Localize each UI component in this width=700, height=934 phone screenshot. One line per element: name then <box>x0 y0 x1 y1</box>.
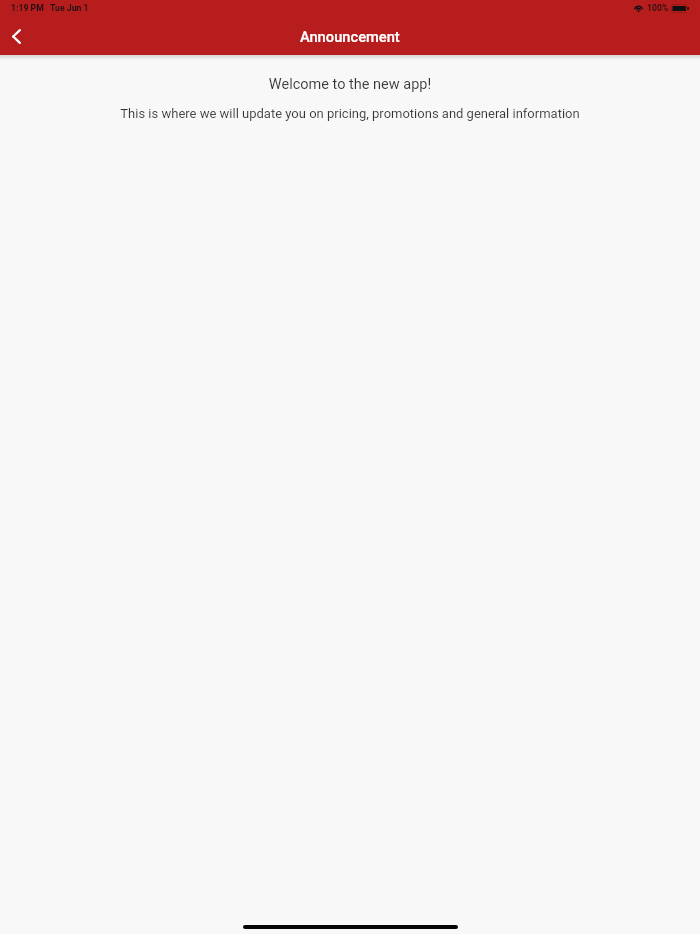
staticText: 1:19 PM <box>11 3 44 13</box>
staticText: This is where we will update you on pric… <box>0 106 700 121</box>
staticText: Tue Jun 1 <box>50 3 89 13</box>
button[interactable]: Back <box>0 20 32 55</box>
staticText: Welcome to the new app! <box>0 76 700 93</box>
staticText: Announcement <box>300 28 400 45</box>
staticText: 100% <box>647 3 669 13</box>
